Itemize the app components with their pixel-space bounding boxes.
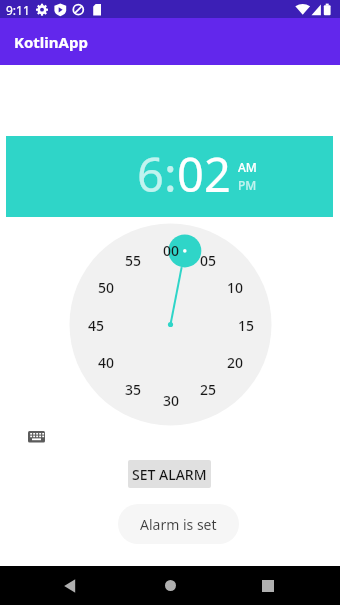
- staticText: 35: [125, 380, 142, 398]
- button[interactable]: 45: [81, 316, 111, 334]
- button[interactable]: 05: [193, 251, 223, 269]
- staticText: 6:: [137, 142, 177, 206]
- staticText: 00: [163, 241, 180, 259]
- button[interactable]: 50: [91, 278, 121, 296]
- button[interactable]: [244, 566, 292, 605]
- staticText: AM: [238, 159, 257, 175]
- button[interactable]: [146, 566, 194, 605]
- staticText: 05: [200, 251, 217, 269]
- button[interactable]: 10: [220, 278, 250, 296]
- button[interactable]: 30: [156, 391, 186, 409]
- button[interactable]: SET ALARM: [128, 460, 211, 488]
- staticText: 30: [163, 391, 180, 409]
- staticText: 02: [177, 142, 231, 206]
- staticText: 40: [98, 353, 115, 371]
- staticText: KotlinApp: [14, 32, 88, 52]
- staticText: SET ALARM: [132, 465, 207, 484]
- button[interactable]: 35: [118, 380, 148, 398]
- button[interactable]: AM: [238, 158, 268, 176]
- button[interactable]: [46, 566, 94, 605]
- button[interactable]: 25: [193, 380, 223, 398]
- staticText: PM: [238, 177, 257, 193]
- staticText: 10: [227, 278, 244, 296]
- staticText: 15: [238, 316, 255, 334]
- staticText: Alarm is set: [140, 515, 217, 534]
- staticText: 25: [200, 380, 217, 398]
- button[interactable]: 15: [231, 316, 261, 334]
- button[interactable]: 40: [91, 353, 121, 371]
- staticText: 50: [98, 278, 115, 296]
- button[interactable]: [22, 425, 51, 448]
- button[interactable]: 00: [156, 241, 186, 259]
- button[interactable]: 6:: [109, 141, 259, 207]
- button[interactable]: 20: [220, 353, 250, 371]
- button[interactable]: 55: [118, 251, 148, 269]
- staticText: 55: [125, 251, 142, 269]
- staticText: 20: [227, 353, 244, 371]
- staticText: 45: [88, 316, 105, 334]
- staticText: 9:11: [6, 2, 30, 18]
- button[interactable]: PM: [238, 176, 268, 194]
